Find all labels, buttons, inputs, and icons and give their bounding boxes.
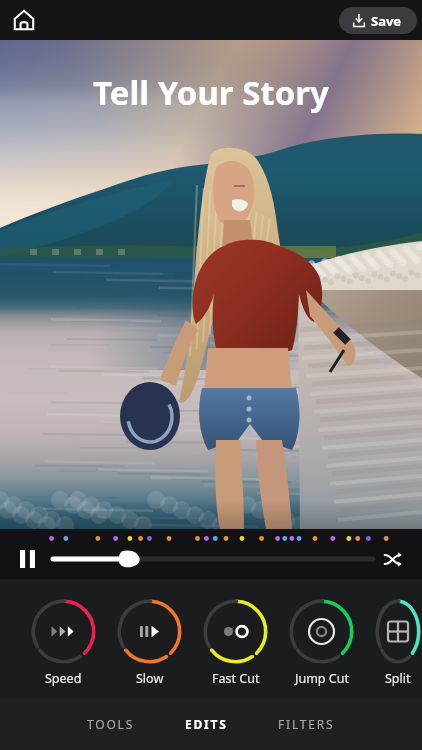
button[interactable] xyxy=(288,598,355,665)
staticText: Fast Cut xyxy=(212,670,260,687)
button[interactable] xyxy=(116,598,183,665)
staticText: FILTERS xyxy=(278,716,335,732)
button[interactable]: Home xyxy=(8,4,40,36)
staticText: EDITS xyxy=(185,716,228,732)
staticText: TOOLS xyxy=(87,716,135,732)
button[interactable]: TOOLS xyxy=(79,706,143,742)
button[interactable]: Save xyxy=(339,7,417,34)
button[interactable]: Pause xyxy=(13,545,41,573)
staticText: Speed xyxy=(45,670,82,687)
button[interactable] xyxy=(374,598,422,665)
button[interactable]: FILTERS xyxy=(270,706,343,742)
button[interactable]: EDITS xyxy=(177,706,236,742)
staticText: Jump Cut xyxy=(295,670,349,687)
staticText: Slow xyxy=(136,670,164,687)
button[interactable] xyxy=(202,598,269,665)
staticText: Tell Your Story xyxy=(93,70,329,115)
button[interactable] xyxy=(30,598,97,665)
staticText: Save xyxy=(371,12,402,30)
button[interactable]: Shuffle xyxy=(379,545,407,573)
staticText: Split xyxy=(385,670,411,687)
